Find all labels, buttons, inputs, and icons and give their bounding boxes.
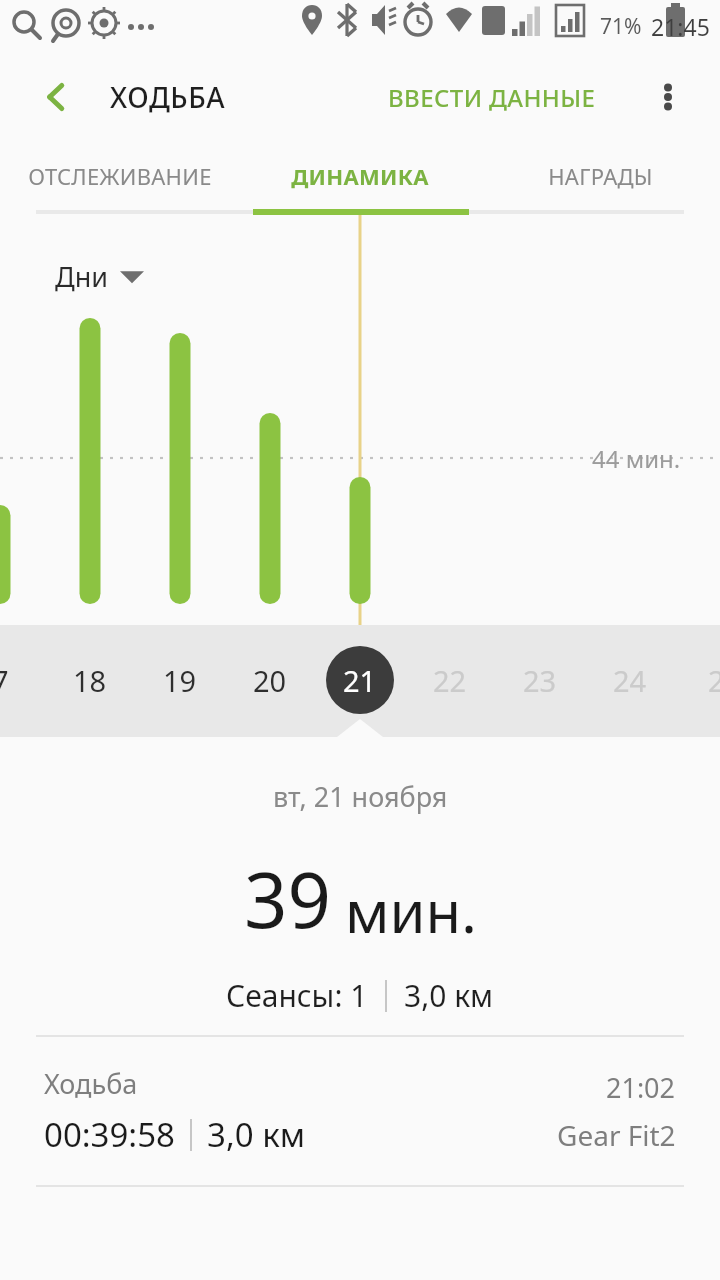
staticText: 21:45 [651,11,710,42]
staticText: 21:02 [606,1069,676,1106]
button[interactable]: 2 [682,646,720,714]
button[interactable]: 7 [0,646,34,714]
staticText: 00:39:58 [44,1112,175,1157]
staticText: 19 [163,661,197,700]
button[interactable]: ОТСЛЕЖИВАНИЕ [0,142,240,210]
staticText: 23 [523,661,557,700]
staticText: 22 [433,661,467,700]
button[interactable]: 18 [56,646,124,714]
button[interactable]: Дни [50,253,149,300]
button[interactable]: Дополнительно [640,69,696,125]
staticText: 24 [613,661,647,700]
staticText: 3,0 км [404,975,494,1016]
button[interactable]: 19 [146,646,214,714]
staticText: ОТСЛЕЖИВАНИЕ [28,161,212,191]
staticText: вт, 21 ноября [273,778,448,815]
button[interactable]: ДИНАМИКА [240,142,480,210]
button[interactable]: 23 [506,646,574,714]
button[interactable]: ВВЕСТИ ДАННЫЕ [382,75,602,120]
button[interactable]: 21 [326,646,394,714]
staticText: Дни [55,258,109,295]
staticText: ХОДЬБА [110,78,226,116]
staticText: НАГРАДЫ [548,161,653,191]
button[interactable]: 20 [236,646,304,714]
button[interactable]: 24 [596,646,664,714]
staticText: мин. [345,871,477,950]
staticText: 2 [708,661,720,700]
staticText: Сеансы: 1 [226,975,368,1016]
button[interactable]: Ходьба [0,1037,720,1185]
staticText: 39 [244,847,331,951]
staticText: Ходьба [44,1065,138,1102]
staticText: 21 [343,661,377,700]
staticText: ДИНАМИКА [291,161,429,191]
staticText: 71% [600,12,642,41]
staticText: 7 [0,661,9,700]
staticText: 44 мин. [592,442,681,475]
staticText: Gear Fit2 [557,1116,676,1154]
staticText: 18 [73,661,107,700]
staticText: ВВЕСТИ ДАННЫЕ [388,81,596,114]
button[interactable]: Назад [28,69,84,125]
staticText: 20 [253,661,287,700]
button[interactable]: 22 [416,646,484,714]
button[interactable]: НАГРАДЫ [480,142,720,210]
staticText: 3,0 км [207,1112,306,1157]
